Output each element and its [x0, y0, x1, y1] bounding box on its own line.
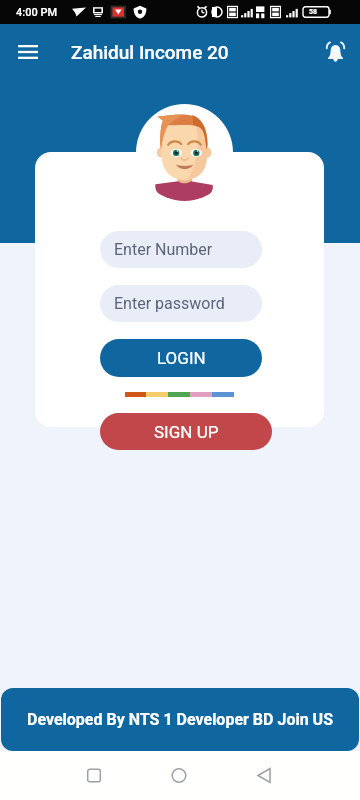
button[interactable]: Notifications: [311, 28, 359, 76]
button[interactable]: Enter password: [100, 285, 262, 322]
staticText: 58: [309, 8, 318, 16]
staticText: Developed By NTS 1 Developer BD Join US: [27, 710, 333, 729]
button[interactable]: Developed By NTS 1 Developer BD Join US: [1, 688, 359, 751]
button[interactable]: Enter Number: [100, 231, 262, 268]
button[interactable]: LOGIN: [100, 339, 262, 377]
button[interactable]: Open navigation menu: [0, 24, 56, 80]
staticText: SIGN UP: [154, 422, 219, 442]
staticText: 4:00 PM: [16, 6, 58, 19]
staticText: Zahidul Income 20: [71, 41, 229, 63]
button[interactable]: SIGN UP: [100, 413, 272, 450]
staticText: LOGIN: [157, 348, 206, 368]
staticText: Enter password: [114, 294, 225, 313]
staticText: Enter Number: [114, 240, 213, 259]
